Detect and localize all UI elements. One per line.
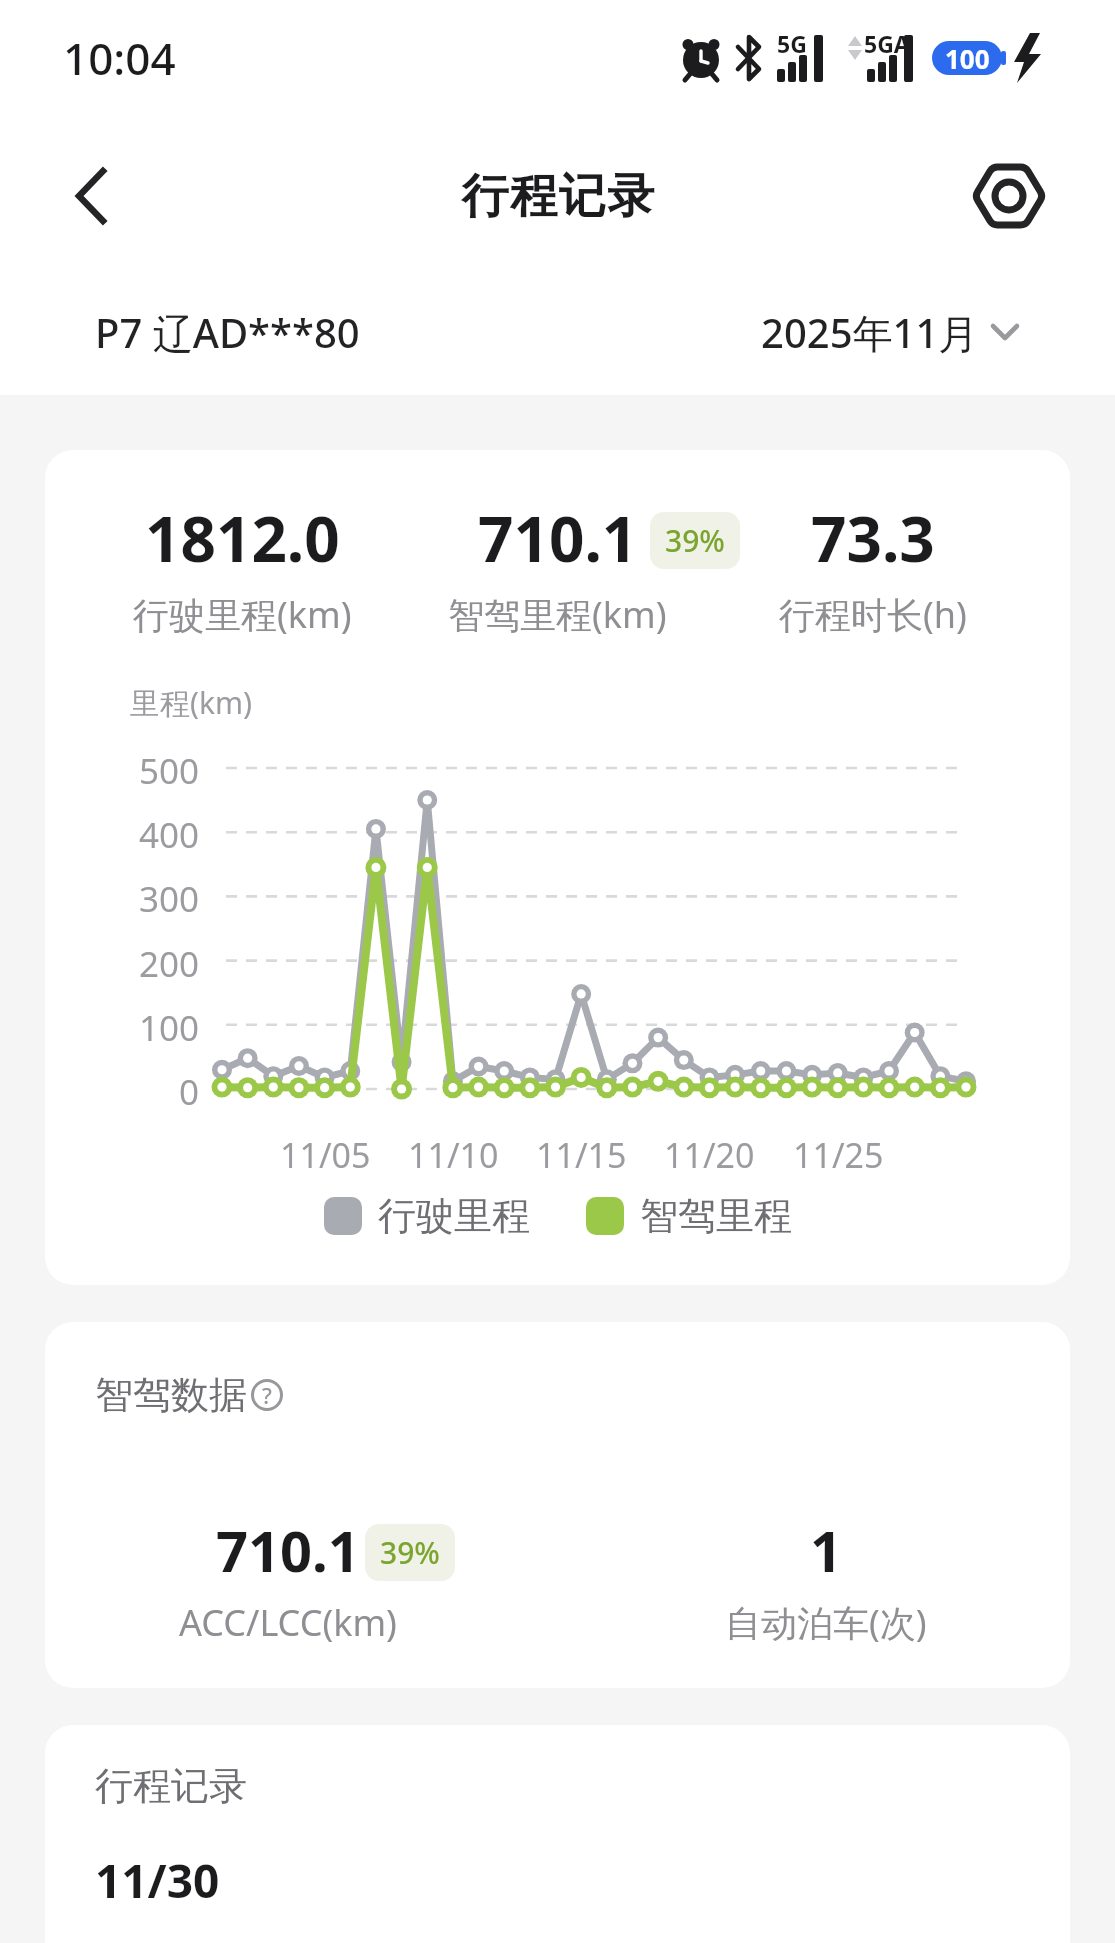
staticText: 73.3 [811, 496, 935, 580]
staticText: 0 [179, 1068, 200, 1110]
staticText: 行驶里程 [378, 1192, 530, 1240]
staticText: 39% [665, 520, 725, 561]
staticText: 行驶里程(km) [133, 590, 352, 639]
staticText: 400 [139, 811, 200, 853]
staticText: 100 [139, 1004, 200, 1046]
staticText: 11/15 [536, 1132, 627, 1176]
staticText: 710.1 [478, 496, 638, 580]
staticText: 11/30 [95, 1849, 220, 1912]
staticText: 1812.0 [145, 496, 340, 580]
staticText: 11/05 [280, 1132, 371, 1176]
staticText: P7 辽AD***80 [95, 305, 360, 360]
staticText: 自动泊车(次) [725, 1598, 927, 1647]
staticText: 智驾数据 [95, 1371, 247, 1419]
staticText: 行程时长(h) [779, 590, 967, 639]
staticText: 行程记录 [95, 1762, 247, 1810]
staticText: 200 [139, 940, 200, 982]
staticText: 5G [777, 28, 807, 59]
staticText: 智驾里程(km) [448, 590, 667, 639]
button[interactable] [64, 168, 120, 224]
staticText: 里程(km) [130, 682, 253, 723]
staticText: 300 [139, 875, 200, 917]
staticText: ACC/LCC(km) [179, 1598, 397, 1647]
button[interactable] [969, 156, 1049, 236]
staticText: 10:04 [63, 28, 176, 88]
button[interactable]: 11/30 [95, 1845, 1070, 1915]
button[interactable]: 2025年11月 [761, 305, 1019, 360]
button[interactable]: ? [250, 1378, 284, 1412]
staticText: 2025年11月 [761, 305, 979, 360]
staticText: 710.1 [216, 1512, 360, 1588]
staticText: 11/20 [664, 1132, 755, 1176]
staticText: ? [262, 1380, 272, 1410]
staticText: 5GA [864, 28, 910, 59]
staticText: 11/10 [408, 1132, 499, 1176]
staticText: 行程记录 [461, 167, 655, 226]
staticText: 100 [945, 41, 990, 75]
staticText: 智驾里程 [640, 1192, 792, 1240]
staticText: 39% [380, 1532, 440, 1573]
staticText: 500 [139, 747, 200, 789]
staticText: 11/25 [793, 1132, 884, 1176]
staticText: 1 [810, 1512, 843, 1588]
